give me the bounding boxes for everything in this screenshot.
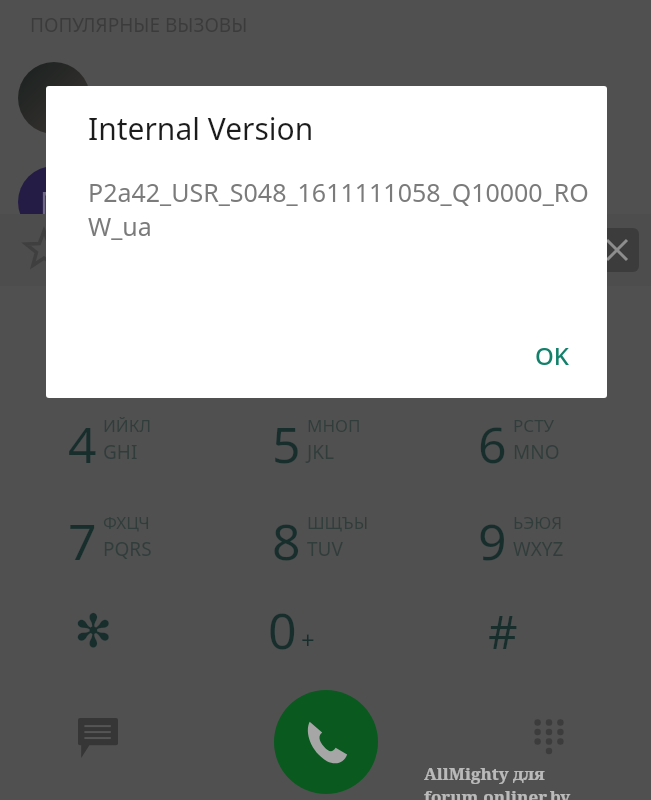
button[interactable]: 7 <box>68 505 238 585</box>
staticText: P2a42_USR_S048_1611111058_Q10000_ROW_ua <box>88 175 589 244</box>
staticText: 9 <box>478 507 507 575</box>
button[interactable]: Favourites <box>8 214 80 286</box>
staticText: Internal Version <box>88 108 314 149</box>
button[interactable]: 5 <box>272 408 442 488</box>
staticText: M <box>40 182 68 223</box>
staticText: РСТУ <box>513 414 555 437</box>
button[interactable]: OK <box>521 331 583 380</box>
staticText: MNO <box>513 439 560 465</box>
staticText: 4 <box>68 410 97 478</box>
button[interactable] <box>18 62 90 134</box>
button[interactable]: Keypad <box>520 708 578 766</box>
staticText: 0 <box>268 596 297 664</box>
staticText: ПОПУЛЯРНЫЕ ВЫЗОВЫ <box>30 12 248 38</box>
button[interactable]: Close <box>595 228 639 272</box>
button[interactable]: 4 <box>68 408 238 488</box>
staticText: 5 <box>272 410 301 478</box>
staticText: МНОП <box>307 414 361 437</box>
staticText: ФХЦЧ <box>103 511 150 534</box>
staticText: + <box>301 623 315 656</box>
button[interactable]: Call <box>274 690 378 794</box>
staticText: JKL <box>307 439 334 465</box>
staticText: TUV <box>307 536 343 562</box>
staticText: ЬЭЮЯ <box>513 511 563 534</box>
button[interactable]: Pound key <box>472 600 534 662</box>
button[interactable]: Message <box>72 712 124 764</box>
staticText: 7 <box>68 507 97 575</box>
staticText: PQRS <box>103 536 152 562</box>
button[interactable]: 9 <box>478 505 648 585</box>
staticText: ✻ <box>74 604 113 658</box>
button[interactable]: 6 <box>478 408 648 488</box>
staticText: WXYZ <box>513 536 564 562</box>
button[interactable]: 0 <box>268 596 315 664</box>
button[interactable]: M <box>18 166 90 238</box>
staticText: AllMighty для forum.onliner.by <box>424 762 651 800</box>
staticText: ШЩЪЫ <box>307 511 369 534</box>
button[interactable]: 8 <box>272 505 442 585</box>
staticText: 6 <box>478 410 507 478</box>
staticText: GHI <box>103 439 138 465</box>
staticText: ИЙКЛ <box>103 414 152 437</box>
staticText: 8 <box>272 507 301 575</box>
button[interactable]: Star key <box>62 600 124 662</box>
staticText: OK <box>535 339 569 372</box>
staticText: # <box>488 600 518 662</box>
